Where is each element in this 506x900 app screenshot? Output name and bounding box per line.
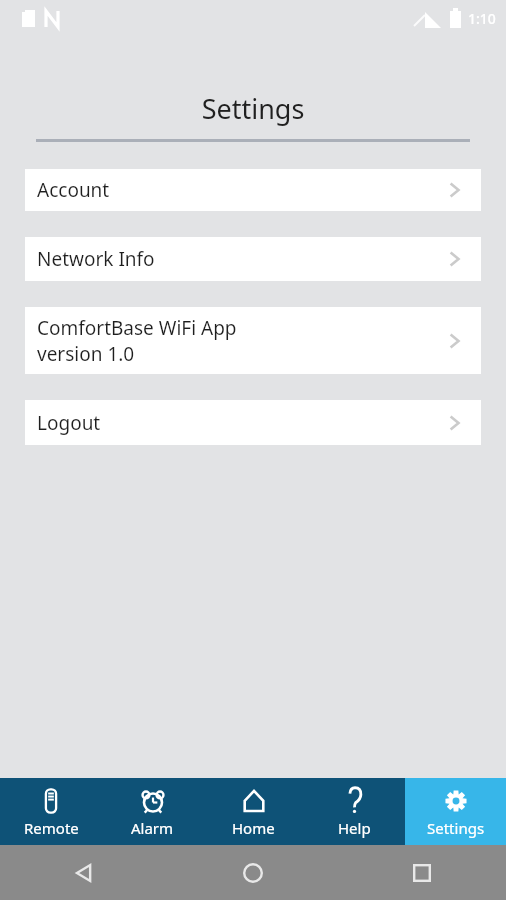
button[interactable]: Settings xyxy=(405,778,506,845)
staticText: version 1.0 xyxy=(37,341,135,367)
button[interactable]: Home xyxy=(168,845,337,900)
button[interactable]: Account xyxy=(25,169,481,211)
button[interactable]: ComfortBase WiFi App xyxy=(25,307,481,374)
staticText: Remote xyxy=(24,818,79,838)
staticText: Alarm xyxy=(131,818,174,838)
button[interactable]: Logout xyxy=(25,400,481,445)
button[interactable]: Help xyxy=(304,778,405,845)
staticText: Account xyxy=(37,177,110,203)
staticText: Home xyxy=(232,818,275,838)
staticText: Logout xyxy=(37,410,101,436)
button[interactable]: Remote xyxy=(0,778,102,845)
button[interactable]: Home xyxy=(203,778,304,845)
staticText: Settings xyxy=(427,818,485,838)
staticText: Network Info xyxy=(37,246,155,272)
staticText: 1:10 xyxy=(468,9,496,28)
staticText: Help xyxy=(338,818,371,838)
button[interactable]: Back xyxy=(0,845,168,900)
button[interactable]: Alarm xyxy=(102,778,203,845)
button[interactable]: Recents xyxy=(337,845,506,900)
button[interactable]: Network Info xyxy=(25,237,481,281)
staticText: Settings xyxy=(0,90,506,127)
staticText: ComfortBase WiFi App xyxy=(37,315,237,341)
